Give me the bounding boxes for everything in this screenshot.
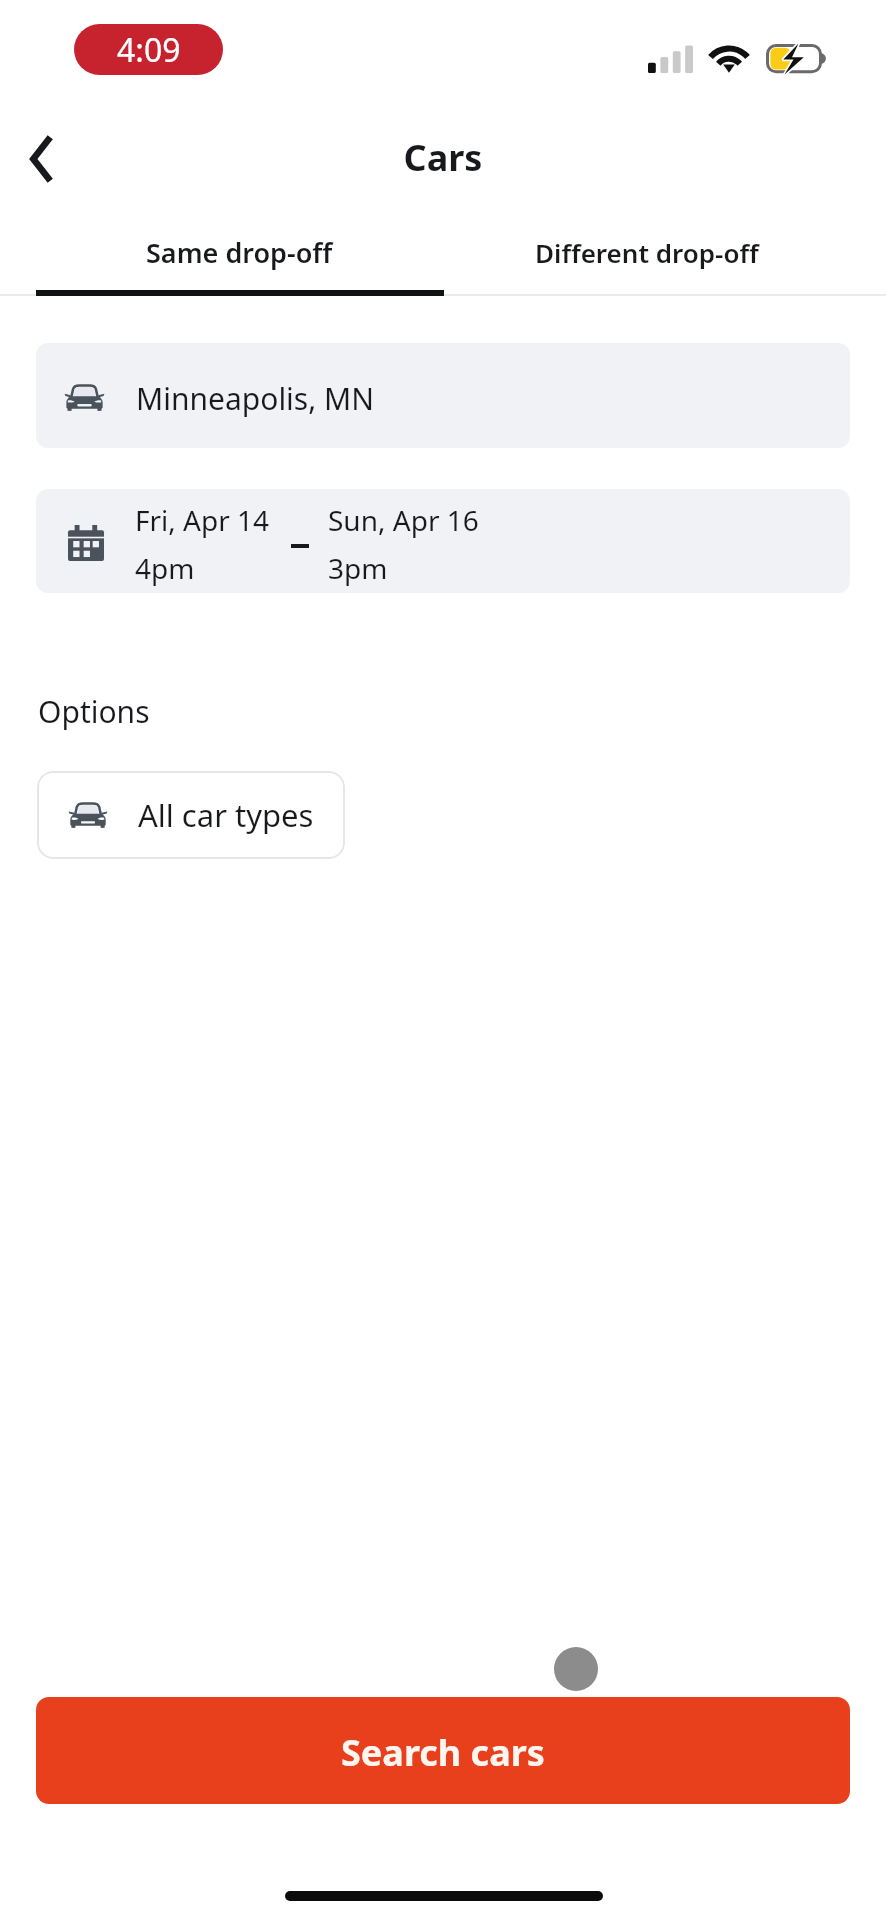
staticText: Same drop-off xyxy=(146,234,333,271)
staticText: 3pm xyxy=(328,549,388,587)
button[interactable]: All car types xyxy=(37,771,345,859)
button[interactable]: Same drop-off xyxy=(36,213,443,291)
staticText: Fri, Apr 14 xyxy=(135,501,270,539)
staticText: 4pm xyxy=(135,549,195,587)
button[interactable]: Back xyxy=(4,119,76,199)
staticText: Different drop-off xyxy=(535,235,759,270)
staticText: Cars xyxy=(0,133,886,182)
button[interactable]: Different drop-off xyxy=(443,213,850,291)
button[interactable]: Search cars xyxy=(36,1697,850,1804)
button[interactable]: Minneapolis, MN xyxy=(36,343,850,448)
staticText: All car types xyxy=(138,794,314,836)
staticText: 4:09 xyxy=(117,28,181,72)
staticText: Options xyxy=(38,691,150,732)
button[interactable]: Fri, Apr 14 xyxy=(36,489,850,593)
staticText: Search cars xyxy=(341,1728,545,1777)
staticText: Minneapolis, MN xyxy=(136,378,375,419)
staticText: Sun, Apr 16 xyxy=(328,501,479,539)
